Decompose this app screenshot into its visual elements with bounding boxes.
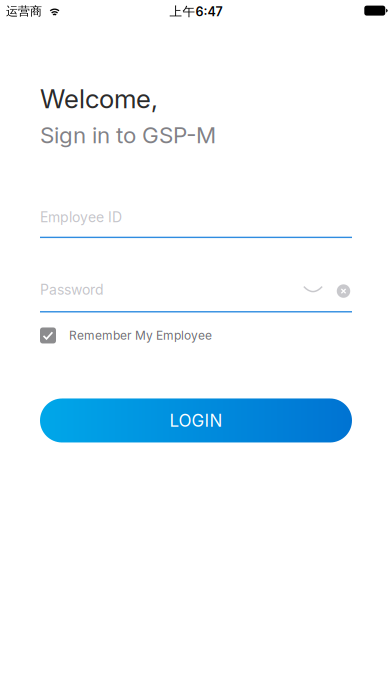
- staticText: Password: [40, 281, 104, 298]
- staticText: Employee ID: [40, 209, 122, 226]
- button[interactable]: Show password: [303, 280, 323, 299]
- staticText: 运营商: [6, 4, 42, 19]
- staticText: Welcome,: [40, 83, 158, 114]
- staticText: 上午6:47: [169, 4, 222, 19]
- staticText: LOGIN: [169, 410, 222, 431]
- staticText: Remember My Employee: [69, 328, 212, 343]
- staticText: Sign in to GSP-M: [40, 121, 216, 149]
- button[interactable]: LOGIN: [40, 398, 352, 442]
- button[interactable]: Remember My Employee: [40, 325, 352, 345]
- button[interactable]: Clear password: [336, 280, 351, 299]
